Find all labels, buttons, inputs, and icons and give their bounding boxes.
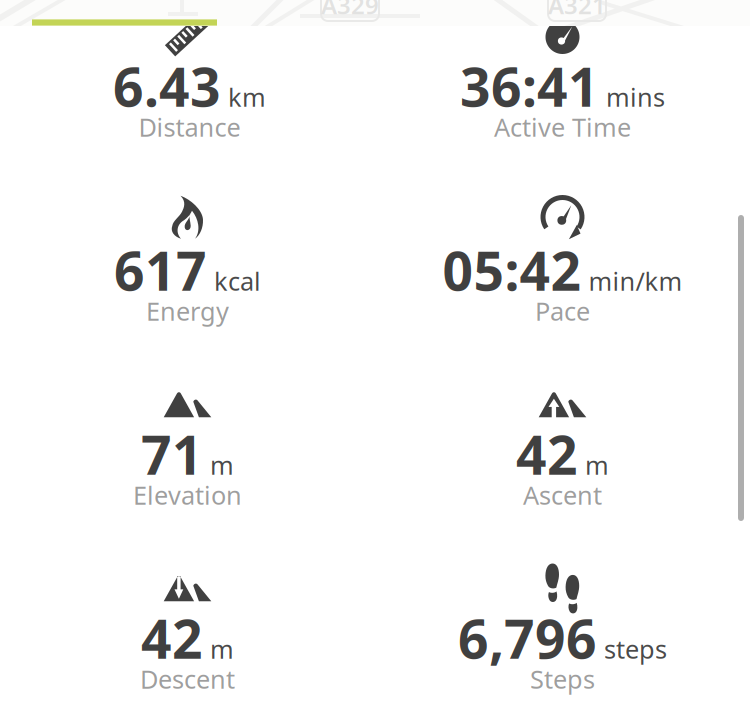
staticText: m — [210, 448, 234, 482]
staticText: Active Time — [494, 110, 631, 144]
staticText: Descent — [140, 662, 235, 696]
button[interactable]: 6,796 — [0, 0, 750, 712]
button[interactable]: 42 — [0, 0, 750, 712]
staticText: Ascent — [523, 478, 602, 512]
button[interactable]: 6.43 — [0, 0, 750, 712]
button[interactable]: 42 — [0, 0, 750, 712]
staticText: 05:42 — [442, 235, 581, 305]
button[interactable]: 71 — [0, 0, 750, 712]
staticText: Pace — [535, 294, 590, 328]
staticText: A329 — [321, 0, 379, 21]
staticText: Elevation — [133, 478, 242, 512]
staticText: km — [228, 80, 266, 114]
staticText: 42 — [516, 419, 578, 489]
staticText: Distance — [138, 110, 240, 144]
staticText: A321 — [548, 0, 606, 21]
staticText: 6.43 — [113, 51, 221, 121]
staticText: steps — [604, 632, 667, 666]
button[interactable]: 36:41 — [0, 0, 750, 712]
staticText: 71 — [141, 419, 203, 489]
staticText: 6,796 — [458, 603, 597, 673]
button[interactable]: 617 — [0, 0, 750, 712]
staticText: Steps — [530, 662, 595, 696]
staticText: 617 — [114, 235, 207, 305]
staticText: min/km — [588, 264, 682, 298]
button[interactable]: 05:42 — [0, 0, 750, 712]
staticText: kcal — [214, 264, 261, 298]
staticText: m — [585, 448, 609, 482]
staticText: 42 — [141, 603, 203, 673]
staticText: Energy — [146, 294, 229, 328]
staticText: 36:41 — [460, 51, 599, 121]
staticText: mins — [606, 80, 665, 114]
staticText: m — [210, 632, 234, 666]
